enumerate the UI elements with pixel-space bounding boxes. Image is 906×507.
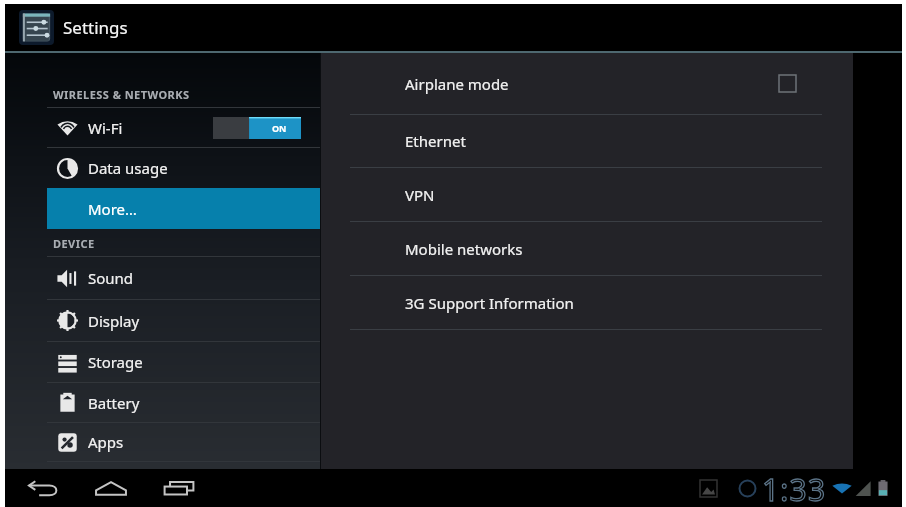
staticText: 3G Support Information [405,293,574,313]
staticText: Data usage [88,158,168,178]
staticText: VPN [405,185,435,205]
button[interactable]: Home [91,469,131,507]
button[interactable]: Wi-Fi on [213,117,301,139]
staticText: Settings [63,16,128,39]
staticText: WIRELESS & NETWORKS [53,87,190,102]
button[interactable]: More… [47,188,320,229]
button[interactable]: Settings app icon [19,10,54,45]
staticText: ON [272,122,287,134]
staticText: Display [88,311,140,331]
staticText: Battery [88,393,140,413]
button[interactable]: VPN [321,168,853,221]
staticText: 1:33 [762,469,827,507]
staticText: Ethernet [405,131,466,151]
staticText: DEVICE [53,236,95,251]
staticText: Storage [88,352,143,372]
staticText: Mobile networks [405,239,523,259]
button[interactable]: 3G Support Information [321,276,853,329]
staticText: Airplane mode [405,74,509,94]
button[interactable]: Ethernet [321,115,853,167]
button[interactable]: Data usage [5,148,320,188]
staticText: Wi-Fi [88,118,123,138]
staticText: Sound [88,268,134,288]
button[interactable]: Storage [5,342,320,382]
button[interactable]: Airplane mode [321,53,853,114]
button[interactable]: Sound [5,257,320,299]
button[interactable]: Battery [5,383,320,422]
button[interactable]: Apps [5,423,320,461]
button[interactable]: Wi-Fi [5,108,320,147]
button[interactable]: Recents [159,469,199,507]
button[interactable]: Back [23,469,63,507]
staticText: Apps [88,432,124,452]
button[interactable]: Display [5,300,320,341]
button[interactable]: Mobile networks [321,222,853,275]
staticText: More… [88,199,137,219]
